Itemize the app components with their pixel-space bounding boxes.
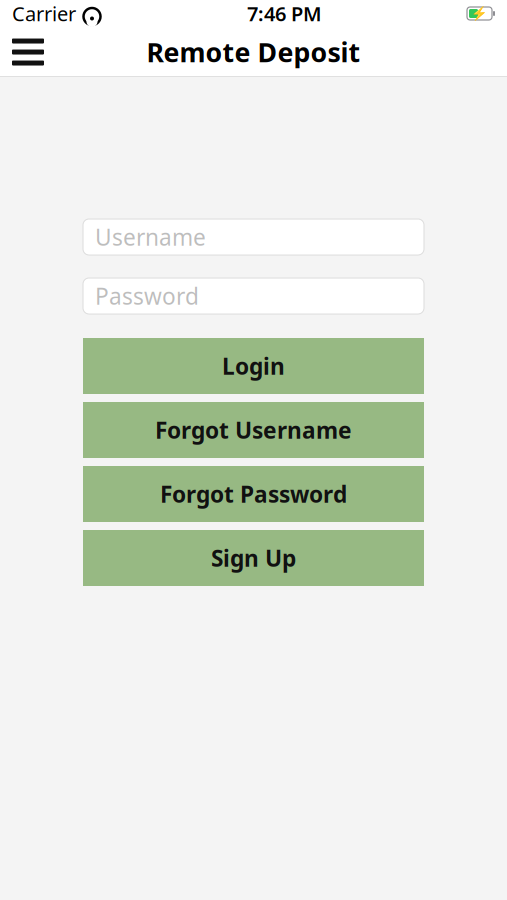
button[interactable]: Username xyxy=(83,219,424,255)
staticText: 7:46 PM xyxy=(247,0,322,27)
button[interactable]: Forgot Username xyxy=(83,402,424,458)
staticText: ⚡ xyxy=(471,6,488,21)
button[interactable]: Sign Up xyxy=(83,530,424,586)
staticText: Username xyxy=(95,222,206,252)
staticText: Forgot Username xyxy=(155,415,352,445)
button[interactable]: Password xyxy=(83,278,424,314)
button[interactable]: Menu xyxy=(0,27,56,77)
button[interactable]: Forgot Password xyxy=(83,466,424,522)
staticText: Carrier xyxy=(12,0,76,27)
staticText: Password xyxy=(95,281,199,311)
staticText: Forgot Password xyxy=(160,479,347,509)
staticText: Login xyxy=(222,351,285,381)
button[interactable]: Login xyxy=(83,338,424,394)
staticText: Sign Up xyxy=(211,543,296,573)
staticText: Remote Deposit xyxy=(146,34,360,70)
